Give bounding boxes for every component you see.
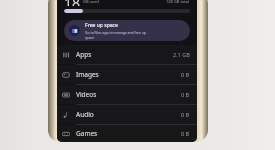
other: Images bbox=[62, 71, 70, 79]
button[interactable]: Audio bbox=[57, 105, 197, 124]
staticText: Images bbox=[76, 70, 99, 79]
other: Games bbox=[62, 130, 70, 138]
staticText: Go to Files app to manage and free up bbox=[85, 30, 146, 35]
staticText: space bbox=[85, 35, 95, 40]
other: Apps bbox=[62, 51, 70, 59]
button[interactable]: Apps bbox=[57, 45, 197, 64]
staticText: 18 bbox=[64, 0, 81, 6]
staticText: Audio bbox=[76, 110, 94, 119]
button[interactable]: Free up space bbox=[64, 20, 190, 41]
other: Audio bbox=[62, 111, 70, 119]
other: Videos bbox=[62, 91, 70, 99]
staticText: 0 B bbox=[181, 130, 190, 137]
staticText: 2.1 GB bbox=[173, 51, 190, 58]
staticText: 0 B bbox=[181, 71, 190, 78]
button[interactable]: Images bbox=[57, 65, 197, 84]
staticText: 128 GB total bbox=[166, 0, 190, 4]
button[interactable]: Videos bbox=[57, 85, 197, 104]
staticText: Apps bbox=[76, 50, 92, 59]
staticText: Games bbox=[76, 129, 98, 138]
staticText: GB used bbox=[83, 0, 99, 4]
staticText: Free up space bbox=[85, 22, 118, 29]
staticText: Videos bbox=[76, 90, 97, 99]
staticText: 0 B bbox=[181, 111, 190, 118]
button[interactable]: Games bbox=[57, 125, 197, 142]
staticText: 0 B bbox=[181, 91, 190, 98]
